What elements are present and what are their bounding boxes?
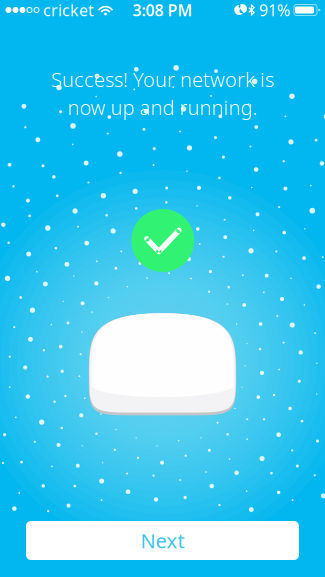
staticText: cricket	[43, 0, 94, 21]
button[interactable]: Next	[26, 521, 299, 560]
staticText: Next	[140, 527, 184, 554]
staticText: 3:08 PM	[132, 0, 192, 21]
staticText: 91%	[259, 0, 290, 21]
staticText: Success! Your network is	[51, 66, 274, 92]
staticText: now up and running.	[67, 94, 257, 120]
